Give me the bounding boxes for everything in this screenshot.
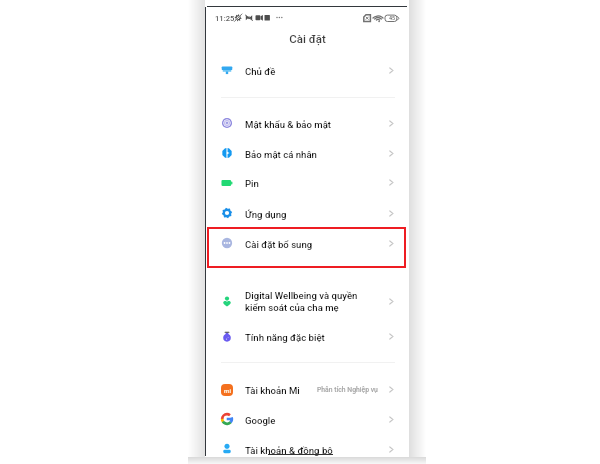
staticText: 11:25 bbox=[215, 14, 235, 23]
staticText: Google bbox=[245, 415, 276, 426]
button[interactable] bbox=[207, 404, 409, 434]
staticText: Tài khoản & đồng bộ bbox=[245, 445, 333, 456]
staticText: Mật khẩu & bảo mật bbox=[245, 119, 332, 130]
button[interactable] bbox=[207, 375, 409, 405]
button[interactable] bbox=[207, 55, 409, 85]
button[interactable] bbox=[207, 108, 409, 138]
staticText: Pin bbox=[245, 178, 259, 189]
staticText: Chủ đề bbox=[245, 66, 276, 77]
staticText: Cài đặt bbox=[289, 32, 326, 45]
button[interactable] bbox=[207, 434, 409, 464]
staticText: Tính năng đặc biệt bbox=[245, 332, 325, 343]
staticText: Bảo mật cá nhân bbox=[245, 149, 317, 160]
staticText: Phân tích Nghiệp vụ bbox=[317, 386, 378, 394]
button[interactable] bbox=[207, 228, 409, 258]
button[interactable] bbox=[207, 138, 409, 168]
staticText: mi bbox=[224, 387, 231, 394]
staticText: Tài khoản Mi bbox=[245, 385, 300, 396]
staticText: Cài đặt bổ sung bbox=[245, 239, 313, 250]
button[interactable] bbox=[207, 321, 409, 351]
staticText: 45 bbox=[389, 15, 396, 21]
button[interactable] bbox=[207, 168, 409, 198]
staticText: Digital Wellbeing và quyền kiểm soát của… bbox=[245, 290, 358, 313]
staticText: Ứng dụng bbox=[245, 209, 287, 220]
button[interactable] bbox=[207, 286, 409, 316]
button[interactable] bbox=[207, 198, 409, 228]
